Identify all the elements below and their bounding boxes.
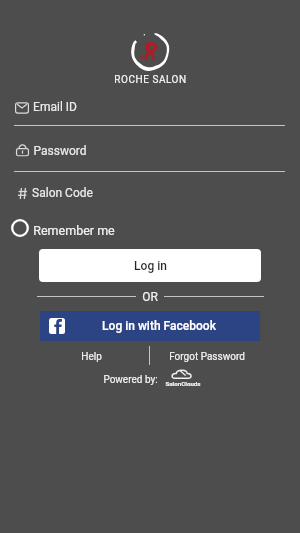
staticText: ROCHE SALON [114, 74, 187, 86]
staticText: OR [142, 290, 158, 304]
button[interactable]: Forgot Password [164, 349, 250, 365]
staticText: Email ID [33, 100, 77, 114]
staticText: Password [33, 144, 87, 158]
staticText: Remember me [33, 223, 115, 238]
staticText: Help [81, 351, 102, 363]
button[interactable] [14, 96, 285, 126]
staticText: Log in with Facebook [102, 319, 216, 333]
button[interactable] [14, 182, 285, 204]
button[interactable]: Help [68, 349, 114, 365]
button[interactable] [14, 140, 285, 171]
staticText: Salon Code [32, 186, 93, 200]
other: Facebook [49, 318, 65, 334]
button[interactable]: Log in with Facebook [40, 311, 260, 341]
button[interactable]: Remember me [11, 219, 115, 237]
staticText: Forgot Password [169, 351, 245, 363]
button[interactable]: Log in [39, 249, 261, 282]
staticText: Log in [134, 259, 167, 273]
staticText: Powered by: [103, 374, 158, 386]
staticText: SalonClouds [165, 380, 201, 387]
